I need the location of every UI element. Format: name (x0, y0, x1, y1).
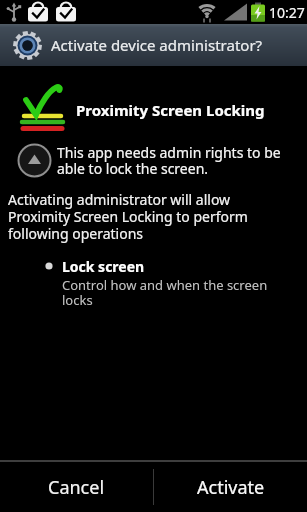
staticText: This app needs admin rights to be able t… (57, 143, 281, 178)
staticText: Activating administrator will allow Prox… (8, 190, 248, 243)
staticText: Activate device administrator? (51, 35, 263, 55)
staticText: Activate (197, 475, 265, 500)
button[interactable]: Cancel (0, 462, 153, 512)
staticText: Cancel (48, 475, 105, 500)
staticText: Proximity Screen Locking (76, 100, 265, 120)
button[interactable]: Activate (154, 462, 307, 512)
staticText: 10:27 (269, 3, 305, 22)
button[interactable] (17, 143, 52, 178)
staticText: Lock screen (62, 257, 145, 276)
staticText: Control how and when the screen locks (62, 276, 268, 309)
